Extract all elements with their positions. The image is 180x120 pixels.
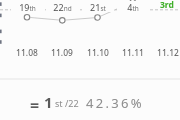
staticText: 11.12 — [157, 47, 179, 59]
staticText: 11.10 — [87, 47, 109, 59]
staticText: 42.36% — [86, 94, 144, 112]
staticText: 11.08 — [16, 47, 38, 59]
staticText: 11.09 — [51, 47, 73, 59]
button[interactable]: = — [0, 84, 180, 114]
staticText: 11.11 — [122, 47, 144, 59]
staticText: 4th — [127, 1, 139, 12]
staticText: 22nd — [53, 1, 72, 12]
staticText: 3rd — [160, 0, 174, 8]
staticText: st /22 — [55, 97, 79, 109]
staticText: = — [30, 94, 40, 116]
staticText: 19th — [19, 1, 36, 12]
staticText: 1 — [44, 92, 53, 112]
staticText: 21st — [90, 1, 106, 12]
